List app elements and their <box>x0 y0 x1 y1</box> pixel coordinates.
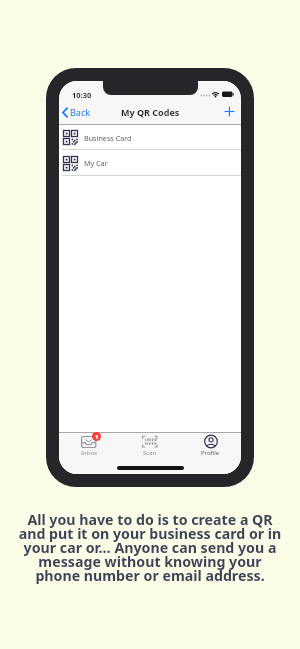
button[interactable]: 1 <box>59 432 119 474</box>
staticText: 10:30 <box>72 90 92 100</box>
staticText: All you have to do is to create a QR and… <box>0 510 300 585</box>
staticText: Scan <box>143 449 157 457</box>
staticText: Back <box>70 106 91 118</box>
staticText: My Car <box>84 158 108 168</box>
staticText: Inbox <box>81 449 98 457</box>
button[interactable]: Scan <box>119 432 180 474</box>
button[interactable]: Profile <box>180 432 241 474</box>
staticText: Business Card <box>84 133 132 143</box>
button[interactable]: My Car <box>59 150 241 176</box>
staticText: My QR Codes <box>121 106 180 118</box>
staticText: Profile <box>201 449 220 457</box>
staticText: 1 <box>95 433 99 441</box>
button[interactable] <box>224 106 235 117</box>
button[interactable]: Back <box>62 106 91 118</box>
button[interactable]: Business Card <box>59 125 241 150</box>
